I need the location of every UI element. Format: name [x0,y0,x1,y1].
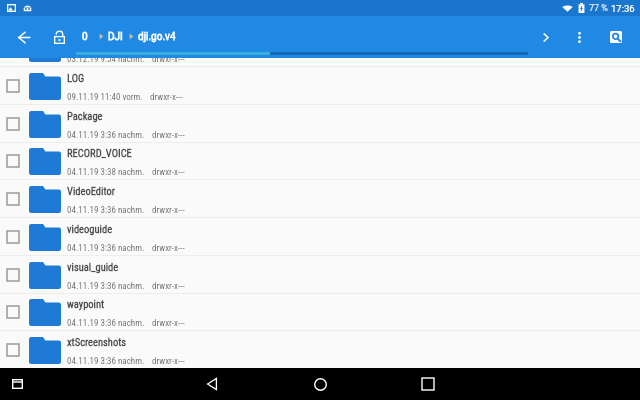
button[interactable]: VideoEditor [0,180,640,218]
staticText: 04.11.19 3:36 nachm. [67,243,145,254]
button[interactable]: Back [200,372,224,396]
staticText: 04.11.19 3:36 nachm. [67,356,145,367]
button[interactable]: DCIM [0,29,640,67]
staticText: 04.11.19 3:36 nachm. [67,281,145,292]
button[interactable]: xtScreenshots [0,331,640,368]
staticText: 04.11.19 3:38 nachm. [67,167,145,178]
staticText: xtScreenshots [67,336,127,348]
button[interactable]: RECORD_VOICE [0,142,640,180]
staticText: drwxr-x--- [152,205,185,216]
staticText: 17:36 [611,3,635,14]
staticText: drwxr-x--- [152,243,185,254]
staticText: 09.11.19 11:40 vorm. [67,92,143,103]
staticText: drwxr-x--- [152,130,185,141]
staticText: 04.11.19 3:36 nachm. [67,318,145,329]
button[interactable]: Home [308,372,332,396]
staticText: drwxr-x--- [152,318,185,329]
staticText: 03.12.19 9:54 nachm. [67,54,145,65]
staticText: 04.11.19 3:36 nachm. [67,205,145,216]
staticText: drwxr-x--- [152,356,185,367]
staticText: waypoint [67,298,105,310]
staticText: Package [67,110,103,122]
button[interactable]: Forward [530,21,562,53]
button[interactable]: LOG [0,67,640,105]
staticText: drwxr-x--- [152,54,185,65]
staticText: VideoEditor [67,185,115,197]
button[interactable]: waypoint [0,293,640,331]
staticText: drwxr-x--- [152,281,185,292]
staticText: dji.go.v4 [138,31,176,43]
staticText: videoguide [67,223,113,235]
button[interactable]: Back [8,21,40,53]
staticText: 04.11.19 3:36 nachm. [67,130,145,141]
button[interactable]: Package [0,105,640,143]
staticText: LOG [67,72,85,84]
staticText: DJI [108,31,123,43]
button[interactable]: Recents [416,372,440,396]
staticText: DCIM [67,34,90,46]
staticText: 0 [82,31,88,43]
button[interactable]: Search [600,21,632,53]
button[interactable]: Window [5,372,29,396]
staticText: visual_guide [67,261,119,273]
staticText: RECORD_VOICE [67,147,132,159]
staticText: drwxr-x--- [150,92,183,103]
staticText: 77 % [589,3,608,14]
button[interactable]: videoguide [0,218,640,256]
button[interactable]: visual_guide [0,256,640,294]
button[interactable]: Unlocked [43,21,75,53]
button[interactable]: More options [563,21,595,53]
staticText: drwxr-x--- [152,167,185,178]
